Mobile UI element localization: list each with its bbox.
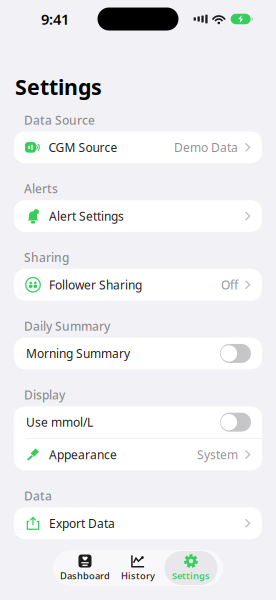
staticText: Sharing bbox=[24, 249, 69, 265]
staticText: Alert Settings bbox=[49, 208, 124, 224]
staticText: Daily Summary bbox=[24, 318, 110, 334]
staticText: System bbox=[197, 447, 238, 462]
button[interactable]: Use mmol/L bbox=[14, 406, 262, 438]
staticText: Off bbox=[221, 277, 238, 293]
staticText: Data bbox=[24, 488, 52, 504]
staticText: Demo Data bbox=[174, 139, 238, 155]
button[interactable]: Dashboard bbox=[58, 551, 111, 585]
staticText: Morning Summary bbox=[26, 345, 130, 361]
button[interactable]: CGM Source bbox=[14, 131, 262, 163]
staticText: Follower Sharing bbox=[49, 277, 142, 293]
staticText: Export Data bbox=[49, 515, 115, 531]
button[interactable]: History bbox=[111, 551, 164, 585]
staticText: Appearance bbox=[49, 447, 117, 462]
staticText: Display bbox=[24, 387, 65, 403]
button[interactable]: Settings bbox=[164, 551, 217, 585]
button[interactable]: Appearance bbox=[14, 439, 262, 470]
button[interactable]: Alert Settings bbox=[14, 200, 262, 232]
button[interactable]: Export Data bbox=[14, 507, 262, 539]
staticText: Data Source bbox=[24, 112, 95, 128]
staticText: 9:41 bbox=[41, 9, 69, 29]
staticText: Dashboard bbox=[60, 570, 110, 582]
staticText: Use mmol/L bbox=[26, 414, 93, 430]
button[interactable]: Follower Sharing bbox=[14, 269, 262, 301]
staticText: History bbox=[121, 570, 155, 582]
staticText: CGM Source bbox=[49, 139, 118, 155]
button[interactable]: Morning Summary bbox=[14, 338, 262, 369]
staticText: Alerts bbox=[24, 181, 58, 197]
staticText: Settings bbox=[15, 73, 102, 101]
staticText: Settings bbox=[172, 570, 210, 582]
